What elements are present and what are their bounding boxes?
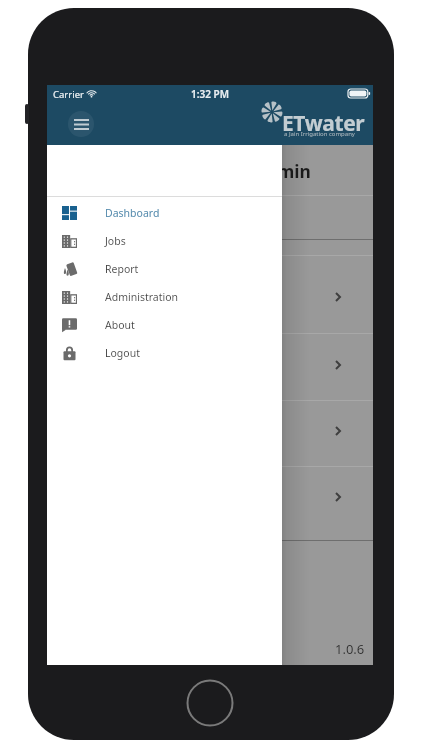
staticText: Report [105,262,139,276]
button[interactable]: Logout [47,339,282,367]
staticText: 1.0.6 [335,640,365,658]
button[interactable]: Report [47,255,282,283]
staticText: a Jain Irrigation company [284,130,355,138]
staticText: Dashboard [105,206,160,220]
staticText: 1:32 PM [191,87,229,101]
staticText: Carrier [53,88,84,101]
staticText: About [105,318,135,332]
button[interactable]: Open navigation menu [68,111,94,137]
button[interactable]: Dashboard [47,199,282,227]
staticText: Jobs [105,234,126,248]
button[interactable]: Jobs [47,227,282,255]
staticText: Logout [105,346,140,360]
staticText: ETwater [282,109,365,138]
staticText: Admin [254,159,311,183]
staticText: Administration [105,290,179,304]
button[interactable]: About [47,311,282,339]
button[interactable]: Administration [47,283,282,311]
